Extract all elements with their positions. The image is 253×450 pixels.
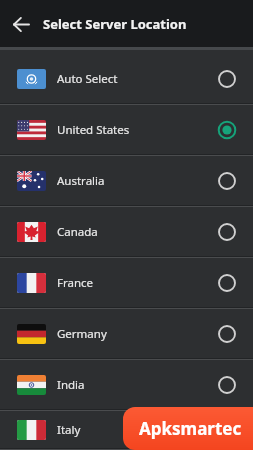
staticText: India bbox=[57, 377, 85, 393]
staticText: Select Server Location bbox=[43, 15, 187, 33]
button[interactable]: France bbox=[0, 258, 253, 309]
button[interactable]: Apksmartec bbox=[123, 407, 253, 450]
staticText: Apksmartec bbox=[139, 417, 242, 440]
staticText: Auto Select bbox=[57, 71, 118, 87]
staticText: Germany bbox=[57, 326, 107, 342]
button[interactable]: India bbox=[0, 360, 253, 411]
staticText: Italy bbox=[57, 422, 81, 438]
staticText: Australia bbox=[57, 173, 105, 189]
staticText: United States bbox=[57, 122, 130, 138]
button[interactable] bbox=[0, 3, 42, 45]
staticText: France bbox=[57, 275, 94, 291]
button[interactable]: United States bbox=[0, 105, 253, 156]
staticText: Canada bbox=[57, 224, 98, 240]
button[interactable]: Australia bbox=[0, 156, 253, 207]
button[interactable]: Italy bbox=[0, 411, 253, 450]
button[interactable]: Germany bbox=[0, 309, 253, 360]
button[interactable]: Canada bbox=[0, 207, 253, 258]
button[interactable]: Auto Select bbox=[0, 54, 253, 105]
